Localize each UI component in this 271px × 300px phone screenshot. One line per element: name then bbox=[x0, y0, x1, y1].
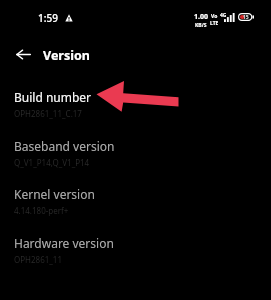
staticText: 15 bbox=[243, 14, 249, 21]
button[interactable]: Kernel version bbox=[0, 183, 271, 227]
staticText: Baseband version bbox=[14, 138, 115, 154]
staticText: Q_V1_P14,Q_V1_P14 bbox=[14, 157, 90, 168]
staticText: Hardware version bbox=[14, 235, 114, 251]
staticText: 1.00 bbox=[194, 12, 208, 22]
staticText: 4G bbox=[220, 12, 227, 19]
button[interactable]: Baseband version bbox=[0, 135, 271, 179]
button[interactable]: Build number bbox=[0, 86, 271, 130]
button[interactable]: Hardware version bbox=[0, 232, 271, 276]
staticText: Build number bbox=[14, 89, 92, 105]
staticText: 4.14.180-perf+ bbox=[14, 205, 69, 216]
staticText: Kernel version bbox=[14, 186, 95, 202]
staticText: OPH2861_11 bbox=[14, 254, 63, 265]
staticText: KB/S bbox=[195, 22, 207, 29]
staticText: Vo bbox=[211, 13, 218, 20]
staticText: Version bbox=[43, 47, 90, 64]
staticText: OPH2861_11_C.17 bbox=[14, 108, 82, 119]
staticText: 1:59 bbox=[38, 11, 58, 25]
button[interactable]: Back bbox=[7, 38, 39, 70]
staticText: LTE bbox=[210, 20, 219, 27]
